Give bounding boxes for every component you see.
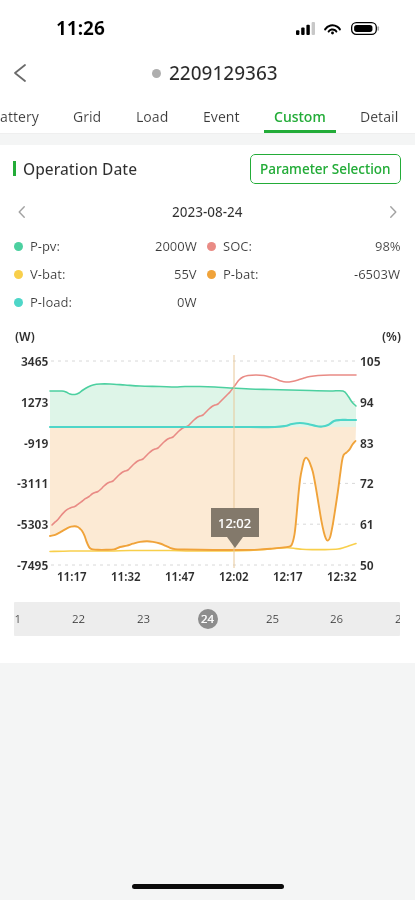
button[interactable]: Detail (343, 96, 415, 134)
button[interactable]: Custom (257, 96, 343, 134)
staticText: Grid (73, 107, 102, 126)
staticText: -919 (24, 435, 49, 451)
staticText: 12:02 (219, 569, 249, 585)
staticText: 61 (360, 516, 374, 532)
staticText: Event (203, 107, 240, 126)
staticText: P-bat: (223, 265, 259, 283)
button[interactable]: Battery (0, 96, 56, 134)
staticText: 11:17 (57, 569, 87, 585)
staticText: 50 (360, 557, 374, 573)
staticText: 2000W (155, 237, 197, 255)
staticText: 11:47 (165, 569, 195, 585)
staticText: 21 (14, 611, 22, 627)
staticText: 2023-08-24 (172, 203, 243, 221)
staticText: 72 (360, 475, 374, 491)
button[interactable]: 25 (240, 602, 305, 636)
staticText: 1273 (21, 394, 49, 410)
staticText: 11:32 (111, 569, 141, 585)
staticText: 105 (360, 353, 381, 369)
button[interactable]: Load (119, 96, 186, 134)
staticText: 27 (395, 611, 400, 627)
staticText: 98% (375, 237, 401, 255)
staticText: -5303 (17, 516, 49, 532)
button[interactable]: Next day (377, 196, 409, 228)
staticText: Load (136, 107, 169, 126)
staticText: 2209129363 (169, 60, 278, 86)
button[interactable]: 23 (111, 602, 176, 636)
staticText: 0W (177, 293, 197, 311)
staticText: Parameter Selection (260, 160, 391, 178)
staticText: V-bat: (30, 265, 66, 283)
staticText: 12:17 (273, 569, 303, 585)
staticText: 12:32 (327, 569, 357, 585)
staticText: 23 (137, 611, 151, 627)
button[interactable]: Grid (56, 96, 119, 134)
button[interactable]: Event (186, 96, 257, 134)
staticText: 11:26 (56, 15, 105, 41)
staticText: -6503W (354, 265, 401, 283)
staticText: 24 (201, 611, 215, 627)
button[interactable]: 26 (304, 602, 369, 636)
button[interactable]: Parameter Selection (250, 154, 401, 184)
button[interactable]: 24 (175, 602, 240, 636)
staticText: Operation Date (23, 158, 138, 179)
button[interactable]: Back (1, 54, 39, 92)
staticText: SOC: (223, 237, 252, 255)
staticText: Detail (360, 107, 399, 126)
staticText: 83 (360, 435, 374, 451)
staticText: 55V (174, 265, 197, 283)
staticText: 25 (266, 611, 280, 627)
staticText: Custom (274, 107, 326, 126)
staticText: 26 (330, 611, 344, 627)
staticText: 12:02 (218, 514, 252, 532)
staticText: (W) (15, 328, 35, 344)
staticText: Battery (0, 107, 39, 126)
staticText: (%) (382, 328, 401, 344)
staticText: 22 (72, 611, 86, 627)
button[interactable]: Previous day (6, 196, 38, 228)
staticText: 3465 (21, 353, 49, 369)
button[interactable]: 22 (46, 602, 111, 636)
staticText: P-load: (30, 293, 73, 311)
staticText: -7495 (17, 557, 49, 573)
button[interactable]: 27 (369, 602, 400, 636)
staticText: -3111 (17, 475, 49, 491)
staticText: P-pv: (30, 237, 60, 255)
button[interactable]: 21 (14, 602, 47, 636)
staticText: 94 (360, 394, 374, 410)
